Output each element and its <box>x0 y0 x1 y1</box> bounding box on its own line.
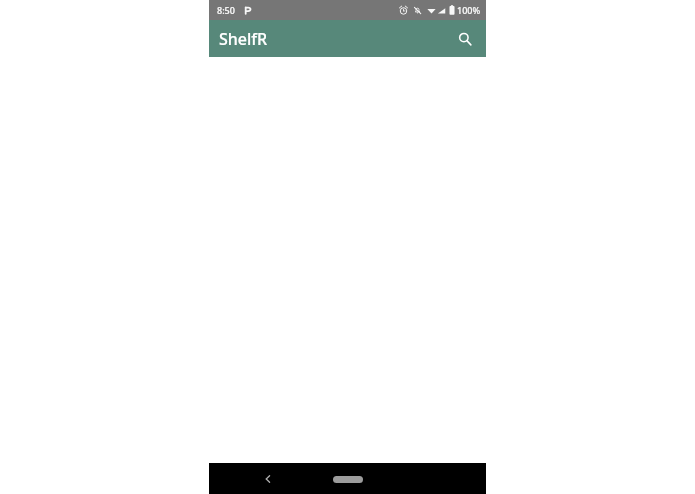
staticText: 8:50 <box>217 4 235 16</box>
button[interactable]: Home <box>333 476 363 483</box>
staticText: ShelfR <box>219 28 268 50</box>
button[interactable]: Back <box>254 465 282 493</box>
button[interactable]: Search <box>452 26 478 52</box>
staticText: 100% <box>457 4 481 16</box>
